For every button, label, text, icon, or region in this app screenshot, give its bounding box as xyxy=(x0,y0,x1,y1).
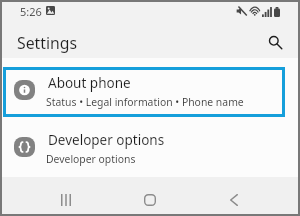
staticText: About phone xyxy=(48,74,131,92)
staticText: Settings xyxy=(17,32,78,54)
button[interactable]: About phone xyxy=(0,66,300,113)
staticText: Developer options xyxy=(48,131,165,149)
staticText: Developer options xyxy=(46,152,136,166)
button[interactable]: Back xyxy=(204,177,264,214)
button[interactable]: Recent apps xyxy=(36,177,96,214)
staticText: 5:26 xyxy=(20,4,42,19)
button[interactable]: Home xyxy=(120,177,180,214)
button[interactable]: Search xyxy=(262,29,286,53)
button[interactable] xyxy=(3,67,285,117)
staticText: Status • Legal information • Phone name xyxy=(46,95,244,109)
button[interactable]: Developer options xyxy=(0,123,300,170)
